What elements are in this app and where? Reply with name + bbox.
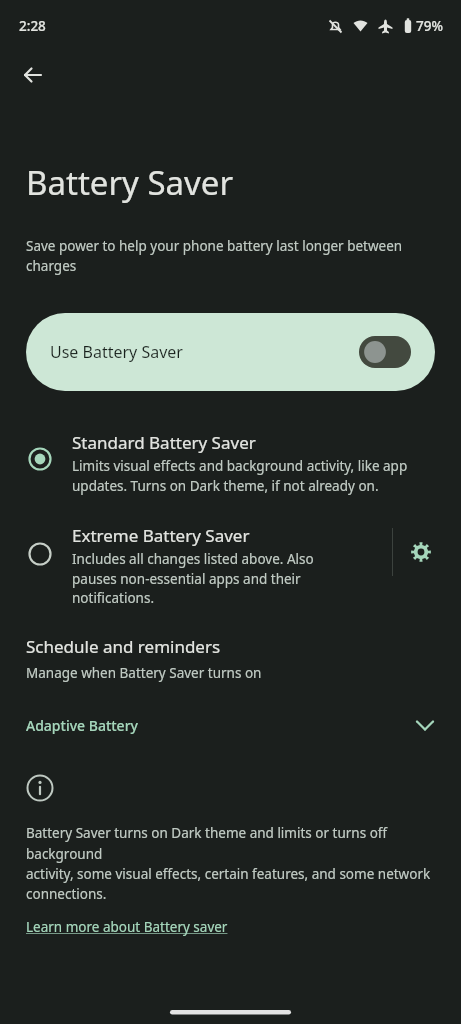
staticText: Includes all changes listed above. Also …	[72, 550, 314, 607]
staticText: Use Battery Saver	[50, 341, 183, 363]
staticText: Battery Saver	[26, 160, 234, 205]
staticText: Standard Battery Saver	[72, 431, 256, 454]
staticText: Manage when Battery Saver turns on	[26, 664, 262, 682]
button[interactable]: Use Battery Saver	[26, 313, 435, 391]
staticText: Adaptive Battery	[26, 716, 138, 735]
button[interactable]: Extreme Battery Saver settings	[393, 524, 449, 580]
button[interactable]: Back	[10, 52, 56, 98]
staticText: Limits visual effects and background act…	[72, 457, 408, 495]
other: Information	[26, 774, 54, 802]
staticText: Schedule and reminders	[26, 635, 221, 658]
button[interactable]: Standard Battery Saver	[0, 423, 461, 495]
staticText: Extreme Battery Saver	[72, 524, 250, 547]
button[interactable]: Adaptive Battery	[0, 704, 461, 746]
staticText: 2:28	[19, 17, 46, 35]
staticText: Learn more about Battery saver	[26, 918, 228, 936]
staticText: Battery Saver turns on Dark theme and li…	[26, 824, 445, 903]
button[interactable]: Extreme Battery Saver	[0, 516, 461, 607]
staticText: 79%	[416, 17, 443, 35]
button[interactable]: Learn more about Battery saver	[26, 918, 228, 936]
staticText: Save power to help your phone battery la…	[26, 237, 441, 275]
